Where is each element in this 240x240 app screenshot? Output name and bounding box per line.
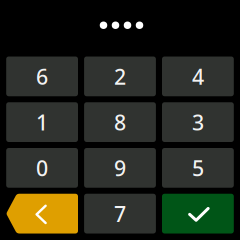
button[interactable]: 3 xyxy=(162,102,234,142)
button[interactable]: 8 xyxy=(84,102,156,142)
staticText: 2 xyxy=(114,62,126,90)
button[interactable]: Confirm xyxy=(162,194,234,234)
button[interactable]: 6 xyxy=(6,56,78,96)
button[interactable]: 1 xyxy=(6,102,78,142)
button[interactable]: Delete xyxy=(6,194,78,234)
staticText: 6 xyxy=(36,62,48,90)
button[interactable]: 9 xyxy=(84,148,156,188)
button[interactable]: 4 xyxy=(162,56,234,96)
staticText: 8 xyxy=(114,108,126,136)
staticText: 4 xyxy=(192,62,204,90)
button[interactable]: 7 xyxy=(84,194,156,234)
button[interactable]: 0 xyxy=(6,148,78,188)
staticText: 5 xyxy=(192,154,204,182)
staticText: 9 xyxy=(114,154,126,182)
button[interactable]: 2 xyxy=(84,56,156,96)
staticText: 0 xyxy=(36,154,48,182)
staticText: 1 xyxy=(36,108,48,136)
button[interactable]: 5 xyxy=(162,148,234,188)
staticText: 3 xyxy=(192,108,204,136)
staticText: 7 xyxy=(114,199,126,228)
